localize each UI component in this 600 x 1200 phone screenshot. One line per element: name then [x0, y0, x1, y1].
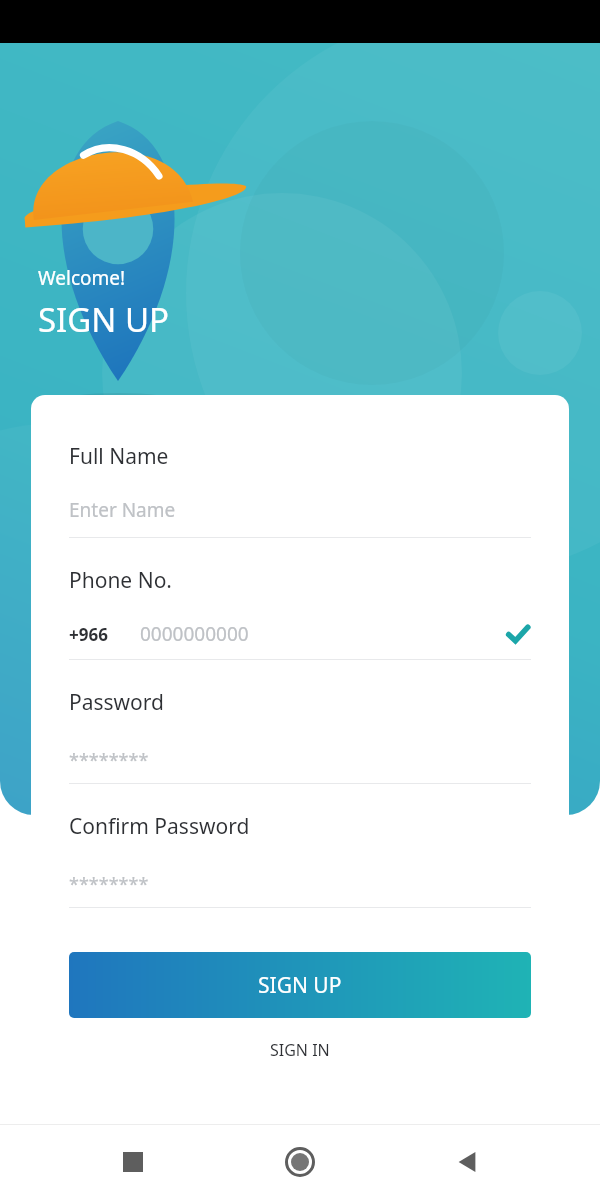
button[interactable]: Back: [443, 1138, 491, 1186]
staticText: ********: [69, 872, 149, 897]
staticText: Enter Name: [69, 497, 176, 523]
staticText: +966: [69, 623, 108, 646]
other: Phone number verified: [505, 621, 531, 647]
staticText: SIGN UP: [38, 297, 170, 342]
button[interactable]: SIGN IN: [69, 1018, 531, 1082]
button[interactable]: +966: [69, 621, 531, 647]
button[interactable]: Home: [276, 1138, 324, 1186]
button[interactable]: SIGN UP: [69, 952, 531, 1018]
staticText: 0000000000: [140, 621, 249, 647]
button[interactable]: ********: [69, 871, 531, 897]
button[interactable]: Enter Name: [69, 497, 531, 523]
staticText: Welcome!: [38, 265, 126, 291]
staticText: Password: [69, 688, 164, 717]
staticText: Full Name: [69, 442, 169, 471]
button[interactable]: ********: [69, 747, 531, 773]
staticText: Confirm Password: [69, 812, 250, 841]
staticText: Phone No.: [69, 566, 172, 595]
button[interactable]: Recents: [109, 1138, 157, 1186]
staticText: SIGN IN: [270, 1039, 330, 1061]
staticText: ********: [69, 748, 149, 773]
staticText: SIGN UP: [258, 971, 342, 1000]
